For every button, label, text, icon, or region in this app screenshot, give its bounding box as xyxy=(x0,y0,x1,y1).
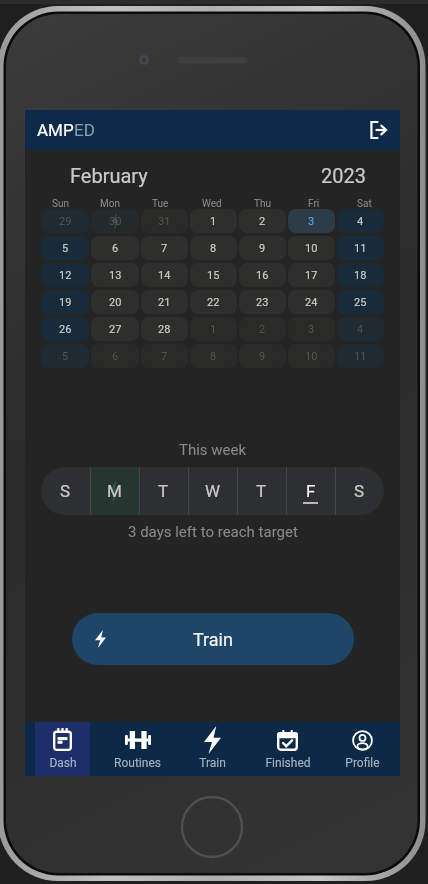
button[interactable]: 11 xyxy=(337,344,384,368)
staticText: 6 xyxy=(112,350,119,363)
button[interactable]: 5 xyxy=(41,344,89,368)
button[interactable]: Profile xyxy=(325,722,400,776)
staticText: Fri xyxy=(308,198,320,209)
button[interactable]: 16 xyxy=(239,263,286,287)
button[interactable]: S xyxy=(41,467,90,515)
staticText: Train xyxy=(193,629,233,650)
staticText: 25 xyxy=(354,296,367,309)
button[interactable]: 12 xyxy=(41,263,89,287)
staticText: 3 xyxy=(308,323,315,336)
staticText: 10 xyxy=(305,350,318,363)
button[interactable]: 6 xyxy=(91,344,139,368)
button[interactable]: 13 xyxy=(91,263,139,287)
button[interactable]: 24 xyxy=(288,290,335,314)
button[interactable]: 8 xyxy=(190,344,237,368)
staticText: 3 xyxy=(308,215,315,228)
staticText: 4 xyxy=(357,215,364,228)
staticText: Dash xyxy=(49,756,77,770)
button[interactable]: 26 xyxy=(41,317,89,341)
button[interactable]: 18 xyxy=(337,263,384,287)
button[interactable]: 30 xyxy=(91,209,139,233)
staticText: 11 xyxy=(354,242,367,255)
staticText: 28 xyxy=(158,323,171,336)
button[interactable]: Dash xyxy=(25,722,100,776)
button[interactable]: 2 xyxy=(239,209,286,233)
button[interactable]: 3 xyxy=(288,317,335,341)
staticText: Finished xyxy=(265,756,311,770)
staticText: Tue xyxy=(152,198,169,209)
button[interactable]: Finished xyxy=(250,722,325,776)
button[interactable]: M xyxy=(90,467,139,515)
button[interactable]: 9 xyxy=(239,344,286,368)
staticText: 6 xyxy=(112,242,119,255)
staticText: 5 xyxy=(62,350,69,363)
staticText: 13 xyxy=(109,269,122,282)
button[interactable]: 28 xyxy=(141,317,188,341)
button[interactable]: 4 xyxy=(337,317,384,341)
staticText: 2023 xyxy=(321,164,366,187)
button[interactable]: Train xyxy=(72,613,354,665)
button[interactable]: W xyxy=(188,467,237,515)
button[interactable]: 4 xyxy=(337,209,384,233)
button[interactable]: T xyxy=(139,467,188,515)
staticText: 10 xyxy=(305,242,318,255)
button[interactable]: T xyxy=(237,467,286,515)
button[interactable]: 10 xyxy=(288,236,335,260)
button[interactable]: 29 xyxy=(41,209,89,233)
staticText: Mon xyxy=(100,198,120,209)
staticText: ED xyxy=(74,120,95,140)
staticText: 22 xyxy=(207,296,220,309)
button[interactable]: 17 xyxy=(288,263,335,287)
staticText: 7 xyxy=(161,242,168,255)
button[interactable]: 19 xyxy=(41,290,89,314)
staticText: 14 xyxy=(158,269,171,282)
button[interactable]: 21 xyxy=(141,290,188,314)
button[interactable]: 14 xyxy=(141,263,188,287)
staticText: Train xyxy=(199,756,226,770)
staticText: 1 xyxy=(210,323,217,336)
button[interactable]: 11 xyxy=(337,236,384,260)
button[interactable]: 20 xyxy=(91,290,139,314)
staticText: 5 xyxy=(62,242,69,255)
staticText: 24 xyxy=(305,296,318,309)
button[interactable]: 8 xyxy=(190,236,237,260)
button[interactable]: 15 xyxy=(190,263,237,287)
button[interactable]: 3 xyxy=(288,209,335,233)
staticText: 8 xyxy=(210,350,217,363)
staticText: Wed xyxy=(202,198,222,209)
staticText: Sat xyxy=(357,198,372,209)
button[interactable]: 25 xyxy=(337,290,384,314)
staticText: 1 xyxy=(210,215,217,228)
staticText: S xyxy=(354,481,365,501)
button[interactable]: 27 xyxy=(91,317,139,341)
button[interactable]: 10 xyxy=(288,344,335,368)
button[interactable]: 7 xyxy=(141,344,188,368)
button[interactable]: 23 xyxy=(239,290,286,314)
button[interactable]: Routines xyxy=(100,722,175,776)
button[interactable]: Log out xyxy=(361,114,393,146)
staticText: S xyxy=(60,481,71,501)
staticText: 9 xyxy=(259,242,266,255)
staticText: 31 xyxy=(158,215,171,228)
button[interactable]: 22 xyxy=(190,290,237,314)
staticText: Profile xyxy=(345,756,380,770)
staticText: Routines xyxy=(114,756,161,770)
staticText: 2 xyxy=(259,215,266,228)
button[interactable]: 2 xyxy=(239,317,286,341)
staticText: 23 xyxy=(256,296,269,309)
button[interactable]: 9 xyxy=(239,236,286,260)
button[interactable]: Train xyxy=(175,722,250,776)
button[interactable]: 31 xyxy=(141,209,188,233)
button[interactable]: 6 xyxy=(91,236,139,260)
staticText: 29 xyxy=(59,215,72,228)
staticText: T xyxy=(158,481,169,501)
button[interactable]: 1 xyxy=(190,317,237,341)
button[interactable]: S xyxy=(335,467,384,515)
staticText: AMP xyxy=(37,120,74,140)
button[interactable]: 1 xyxy=(190,209,237,233)
staticText: 17 xyxy=(305,269,318,282)
button[interactable]: F xyxy=(286,467,335,515)
button[interactable]: 5 xyxy=(41,236,89,260)
staticText: 30 xyxy=(109,215,122,228)
button[interactable]: 7 xyxy=(141,236,188,260)
